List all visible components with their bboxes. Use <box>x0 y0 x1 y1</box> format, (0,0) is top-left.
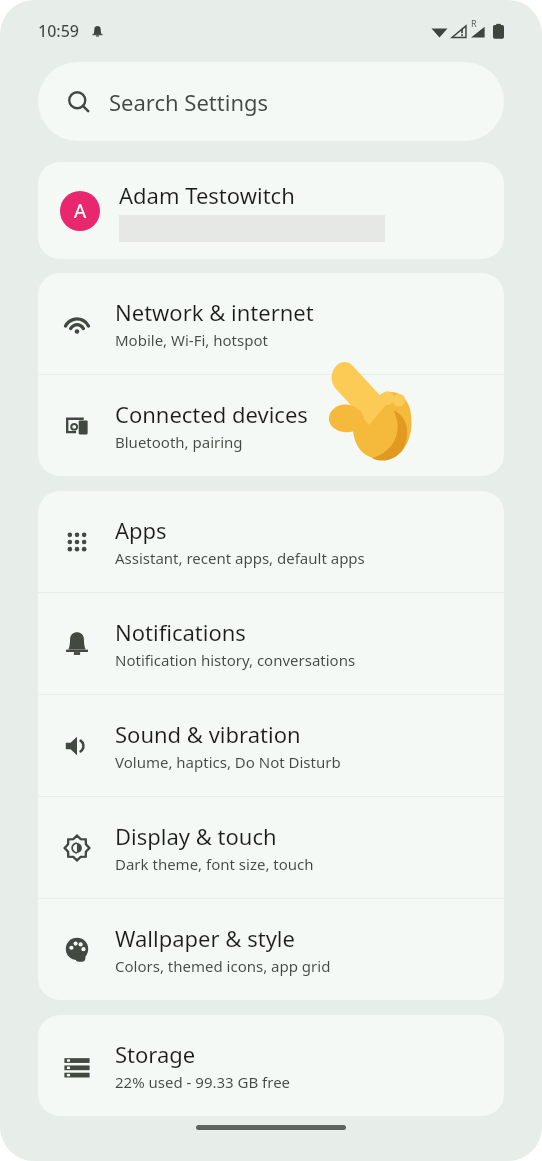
other: Apps <box>63 528 91 556</box>
staticText: Notification history, conversations <box>115 650 356 670</box>
button[interactable]: Connected devices <box>38 375 504 476</box>
other: Sound and vibration <box>63 732 91 760</box>
staticText: Assistant, recent apps, default apps <box>115 548 365 568</box>
other: Display and touch <box>63 834 91 862</box>
staticText: Colors, themed icons, app grid <box>115 956 331 976</box>
staticText: Apps <box>115 515 167 545</box>
other: Connected devices <box>63 412 91 440</box>
staticText: 22% used - 99.33 GB free <box>115 1072 291 1092</box>
staticText: Volume, haptics, Do Not Disturb <box>115 752 341 772</box>
other: Storage <box>63 1052 91 1080</box>
button[interactable]: Sound and vibration <box>38 695 504 796</box>
button[interactable]: Network and internet <box>38 273 504 374</box>
staticText: Connected devices <box>115 399 308 429</box>
staticText: R <box>471 17 477 29</box>
button[interactable]: Apps <box>38 491 504 592</box>
staticText: Storage <box>115 1039 196 1069</box>
other: Network and internet <box>63 310 91 338</box>
staticText: Network & internet <box>115 297 314 327</box>
staticText: Sound & vibration <box>115 719 301 749</box>
staticText: A <box>74 198 87 224</box>
staticText: 10:59 <box>38 20 79 42</box>
button[interactable]: Storage <box>38 1015 504 1116</box>
staticText: Display & touch <box>115 821 277 851</box>
button[interactable]: Notifications <box>38 593 504 694</box>
button[interactable]: Search Settings <box>38 62 504 141</box>
staticText: Notifications <box>115 617 246 647</box>
staticText: Bluetooth, pairing <box>115 432 243 452</box>
button[interactable]: A <box>38 162 504 259</box>
staticText: Dark theme, font size, touch <box>115 854 314 874</box>
button[interactable]: Wallpaper and style <box>38 899 504 1000</box>
staticText: Adam Testowitch <box>119 180 295 210</box>
button[interactable]: Display and touch <box>38 797 504 898</box>
other: Notifications <box>63 630 91 658</box>
staticText: Mobile, Wi-Fi, hotspot <box>115 330 268 350</box>
staticText: Wallpaper & style <box>115 923 295 953</box>
other: Wallpaper and style <box>63 936 91 964</box>
staticText: Search Settings <box>109 87 269 117</box>
